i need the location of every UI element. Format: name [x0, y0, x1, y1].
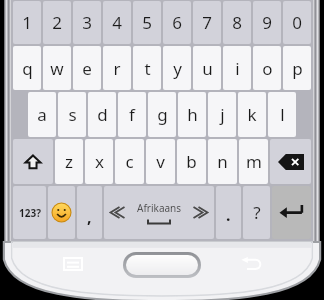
staticText: a	[37, 103, 47, 126]
staticText: 1	[22, 11, 32, 34]
staticText: 5	[142, 11, 152, 34]
staticText: v	[156, 150, 165, 173]
button[interactable]: 4	[103, 1, 131, 44]
button[interactable]: s	[58, 92, 86, 137]
staticText: l	[280, 103, 285, 126]
button[interactable]: 5	[133, 1, 161, 44]
button[interactable]: 0	[283, 1, 311, 44]
staticText: 4	[112, 11, 122, 34]
staticText: ,	[87, 206, 92, 228]
button[interactable]: Home	[123, 252, 201, 278]
button[interactable]: 123?	[13, 186, 46, 239]
button[interactable]: h	[178, 92, 206, 137]
button[interactable]: z	[55, 139, 83, 184]
staticText: c	[125, 150, 134, 173]
staticText: ?	[253, 201, 261, 224]
button[interactable]: y	[163, 46, 191, 90]
staticText: r	[113, 57, 121, 80]
button[interactable]: Emoji	[48, 186, 75, 239]
button[interactable]: r	[103, 46, 131, 90]
button[interactable]: 9	[253, 1, 281, 44]
staticText: x	[95, 150, 104, 173]
button[interactable]: k	[238, 92, 266, 137]
staticText: 0	[292, 11, 302, 34]
staticText: 8	[232, 11, 242, 34]
button[interactable]: x	[85, 139, 113, 184]
button[interactable]: 3	[73, 1, 101, 44]
staticText: 6	[172, 11, 182, 34]
button[interactable]: c	[115, 139, 144, 184]
button[interactable]: 1	[13, 1, 41, 44]
button[interactable]: e	[73, 46, 101, 90]
button[interactable]: Space, Afrikaans	[104, 186, 214, 239]
staticText: b	[186, 150, 197, 173]
button[interactable]: Backspace	[270, 139, 311, 184]
staticText: m	[246, 150, 262, 173]
staticText: 7	[202, 11, 212, 34]
button[interactable]: 8	[223, 1, 251, 44]
button[interactable]: q	[13, 46, 41, 90]
staticText: w	[50, 57, 64, 80]
staticText: g	[157, 103, 168, 126]
button[interactable]: v	[146, 139, 175, 184]
button[interactable]: t	[133, 46, 161, 90]
staticText: e	[82, 57, 92, 80]
staticText: s	[68, 103, 77, 126]
button[interactable]: Shift	[13, 139, 53, 184]
button[interactable]: 6	[163, 1, 191, 44]
button[interactable]: Back	[234, 247, 268, 281]
staticText: p	[292, 57, 303, 80]
button[interactable]: 2	[43, 1, 71, 44]
staticText: Afrikaans	[137, 201, 182, 215]
staticText: u	[202, 57, 213, 80]
staticText: 2	[52, 11, 62, 34]
button[interactable]: n	[208, 139, 237, 184]
staticText: 3	[82, 11, 92, 34]
button[interactable]: Recent apps	[56, 247, 90, 281]
button[interactable]: Period	[216, 186, 241, 239]
staticText: o	[262, 57, 273, 80]
staticText: h	[187, 103, 198, 126]
button[interactable]: b	[177, 139, 206, 184]
staticText: y	[173, 57, 182, 80]
button[interactable]: f	[118, 92, 146, 137]
staticText: j	[220, 103, 225, 126]
button[interactable]: o	[253, 46, 281, 90]
button[interactable]: m	[239, 139, 268, 184]
staticText: 123?	[19, 206, 41, 220]
staticText: d	[97, 103, 108, 126]
button[interactable]: ?	[243, 186, 270, 239]
button[interactable]: a	[28, 92, 56, 137]
button[interactable]: 7	[193, 1, 221, 44]
staticText: n	[217, 150, 228, 173]
button[interactable]: i	[223, 46, 251, 90]
button[interactable]: p	[283, 46, 311, 90]
staticText: i	[235, 57, 240, 80]
button[interactable]: g	[148, 92, 176, 137]
button[interactable]: u	[193, 46, 221, 90]
staticText: t	[144, 57, 151, 80]
button[interactable]: Comma	[77, 186, 102, 239]
staticText: .	[226, 204, 231, 226]
staticText: 9	[262, 11, 272, 34]
staticText: k	[247, 103, 257, 126]
staticText: f	[129, 103, 135, 126]
staticText: z	[65, 150, 73, 173]
staticText: q	[22, 57, 33, 80]
button[interactable]: d	[88, 92, 116, 137]
button[interactable]: w	[43, 46, 71, 90]
button[interactable]: l	[268, 92, 296, 137]
button[interactable]: j	[208, 92, 236, 137]
button[interactable]: Enter	[272, 186, 311, 239]
